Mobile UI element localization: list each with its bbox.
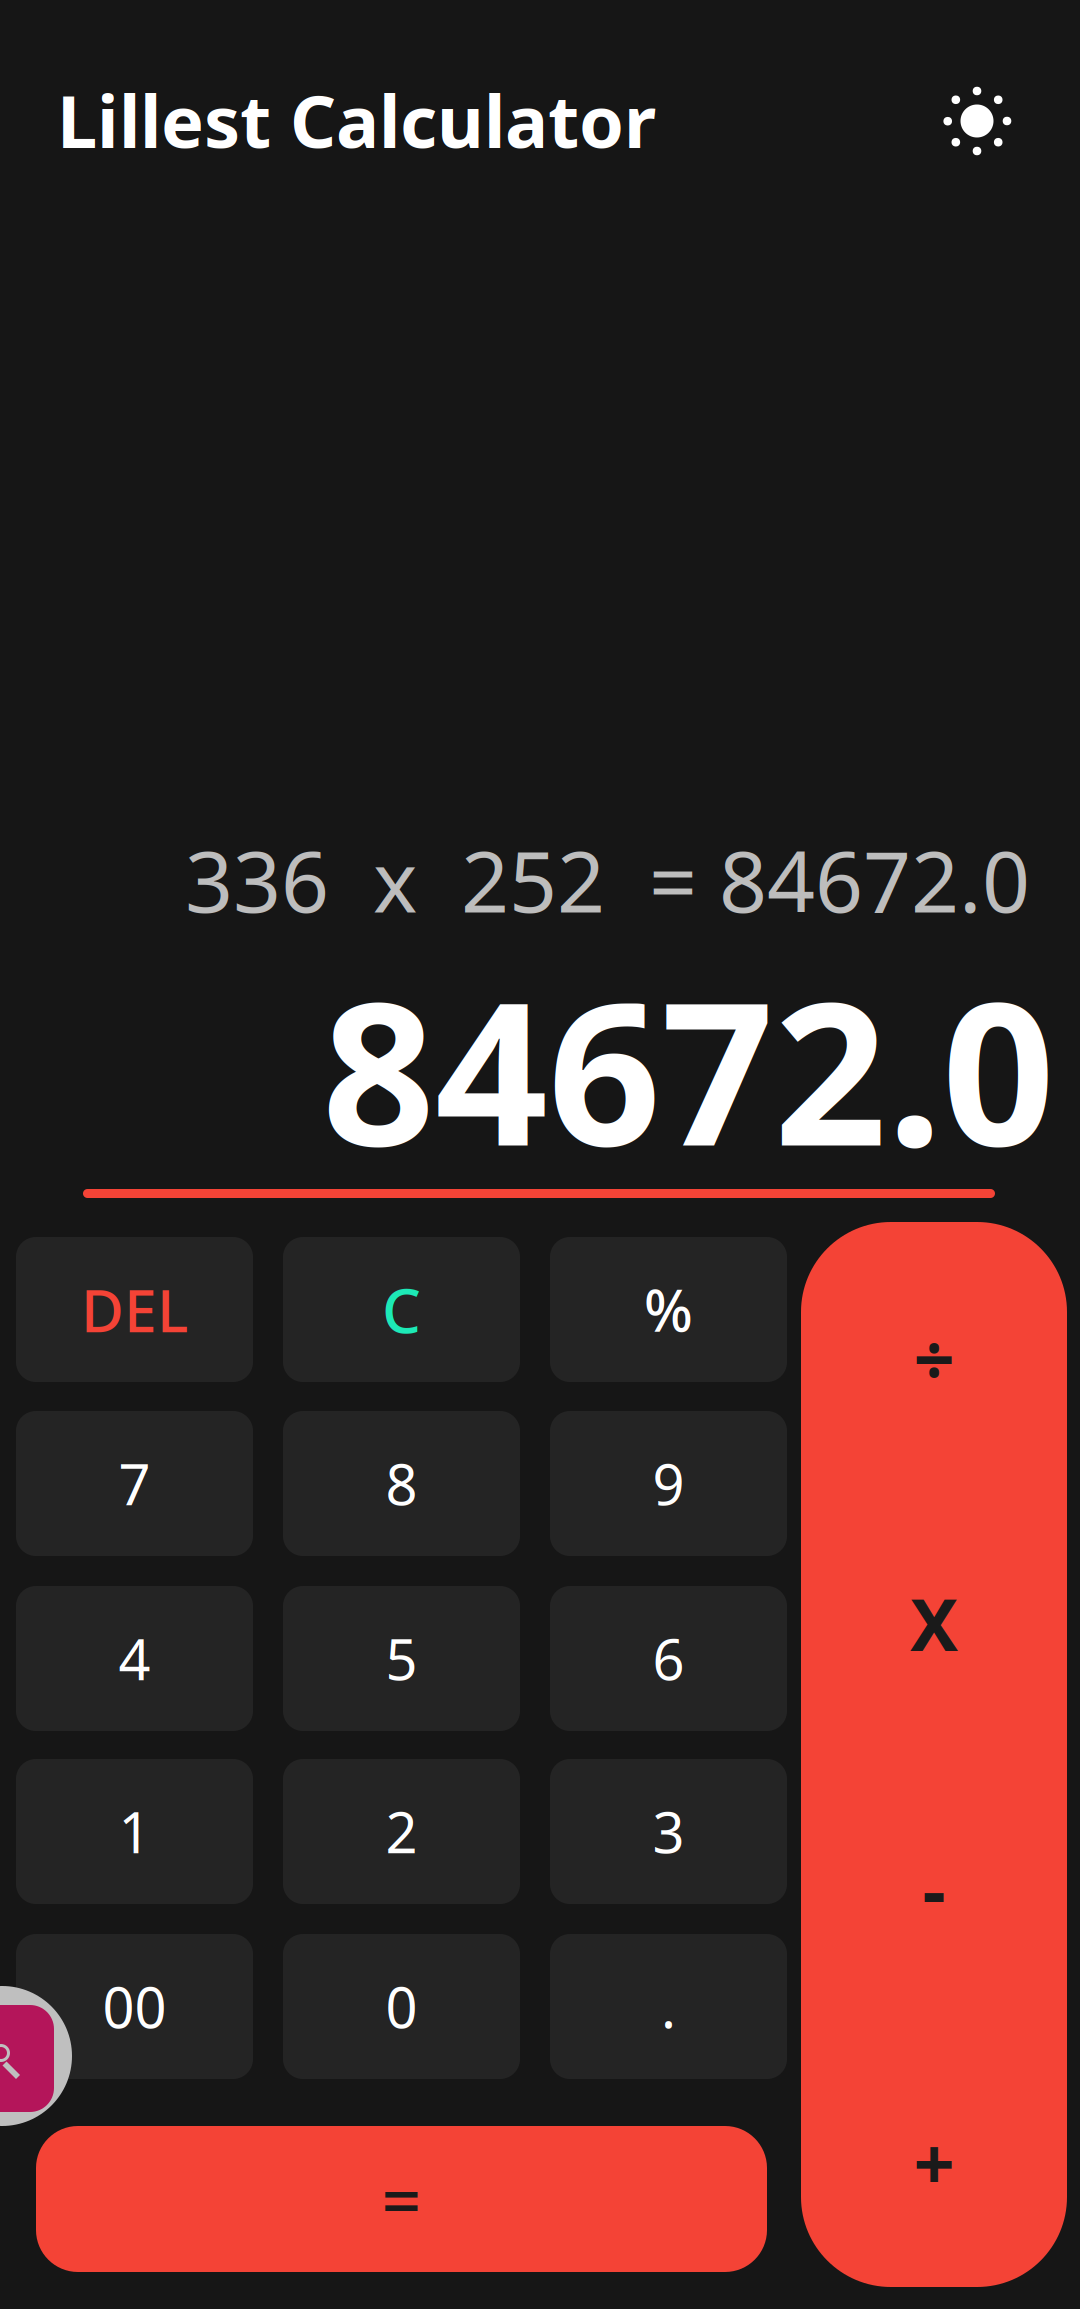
button[interactable]: DEL <box>16 1237 253 1382</box>
button[interactable]: 9 <box>550 1411 787 1556</box>
button[interactable]: 8 <box>283 1411 520 1556</box>
staticText: 0 <box>385 1969 417 2044</box>
staticText: 4 <box>118 1621 150 1696</box>
button[interactable]: 5 <box>283 1586 520 1731</box>
button[interactable]: 0 <box>283 1934 520 2079</box>
button[interactable]: - <box>801 1758 1067 2020</box>
staticText: X <box>910 1575 958 1671</box>
button[interactable]: % <box>550 1237 787 1382</box>
staticText: ÷ <box>913 1310 954 1406</box>
button[interactable]: 6 <box>550 1586 787 1731</box>
staticText: 9 <box>652 1446 684 1521</box>
button[interactable]: = <box>36 2126 767 2272</box>
button[interactable]: Search <box>0 1986 72 2126</box>
button[interactable]: Brightness <box>942 86 1012 156</box>
staticText: + <box>913 2114 954 2210</box>
staticText: DEL <box>81 1270 188 1348</box>
button[interactable]: . <box>550 1934 787 2079</box>
staticText: 1 <box>118 1794 150 1869</box>
button[interactable]: C <box>283 1237 520 1382</box>
button[interactable]: X <box>801 1492 1067 1754</box>
button[interactable]: 3 <box>550 1759 787 1904</box>
staticText: 2 <box>385 1794 417 1869</box>
button[interactable]: 4 <box>16 1586 253 1731</box>
staticText: 00 <box>102 1969 166 2044</box>
button[interactable]: 1 <box>16 1759 253 1904</box>
staticText: Lillest Calculator <box>57 72 656 168</box>
staticText: - <box>922 1841 945 1937</box>
staticText: 8 <box>385 1446 417 1521</box>
staticText: C <box>382 1269 421 1350</box>
staticText: 84672.0 <box>322 938 1055 1200</box>
staticText: 336 x 252 = 84672.0 <box>185 824 1030 936</box>
staticText: 6 <box>652 1621 684 1696</box>
button[interactable]: 2 <box>283 1759 520 1904</box>
staticText: 3 <box>652 1794 684 1869</box>
staticText: 5 <box>385 1621 417 1696</box>
button[interactable]: 7 <box>16 1411 253 1556</box>
staticText: . <box>661 1969 676 2044</box>
button[interactable]: + <box>801 2031 1067 2293</box>
staticText: = <box>381 2153 421 2245</box>
button[interactable]: 00 <box>16 1934 253 2079</box>
staticText: % <box>644 1271 693 1347</box>
button[interactable]: ÷ <box>801 1227 1067 1489</box>
staticText: 7 <box>118 1446 150 1521</box>
